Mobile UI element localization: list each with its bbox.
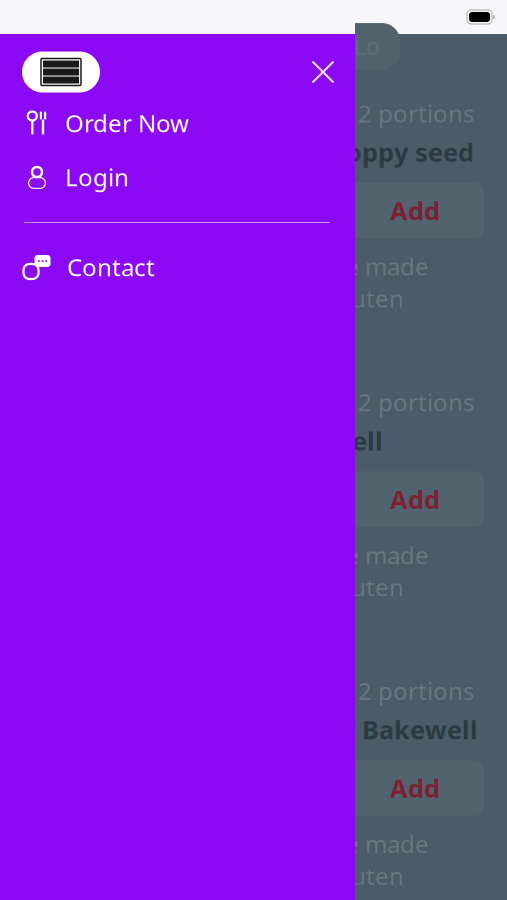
button[interactable]: Contact <box>0 240 355 294</box>
staticText: well <box>330 424 383 457</box>
staticText: Login <box>65 161 129 193</box>
button[interactable]: Login <box>0 150 355 204</box>
staticText: ry Bakewell <box>330 713 478 746</box>
staticText: Add <box>390 771 440 805</box>
button[interactable]: Order Now <box>0 96 355 150</box>
staticText: be made gluten <box>330 250 429 314</box>
staticText: - 12 portions <box>330 386 474 418</box>
button[interactable]: Close menu <box>299 48 347 96</box>
button[interactable]: Add <box>346 471 484 527</box>
staticText: Lo <box>354 31 380 61</box>
staticText: Add <box>390 194 440 227</box>
button[interactable]: Kendall County Bakery home <box>22 51 100 92</box>
staticText: poppy seed <box>330 135 474 169</box>
staticText: be made gluten <box>330 539 429 603</box>
staticText: drips cakes <box>170 31 290 61</box>
staticText: - 12 portions <box>330 97 474 129</box>
staticText: Order Now <box>65 107 189 139</box>
staticText: be made gluten <box>330 828 429 891</box>
staticText: Contact <box>67 251 155 283</box>
button[interactable]: Add <box>346 183 484 238</box>
button[interactable]: Add <box>346 760 484 816</box>
staticText: - 12 portions <box>330 675 474 707</box>
staticText: Add <box>390 482 440 516</box>
